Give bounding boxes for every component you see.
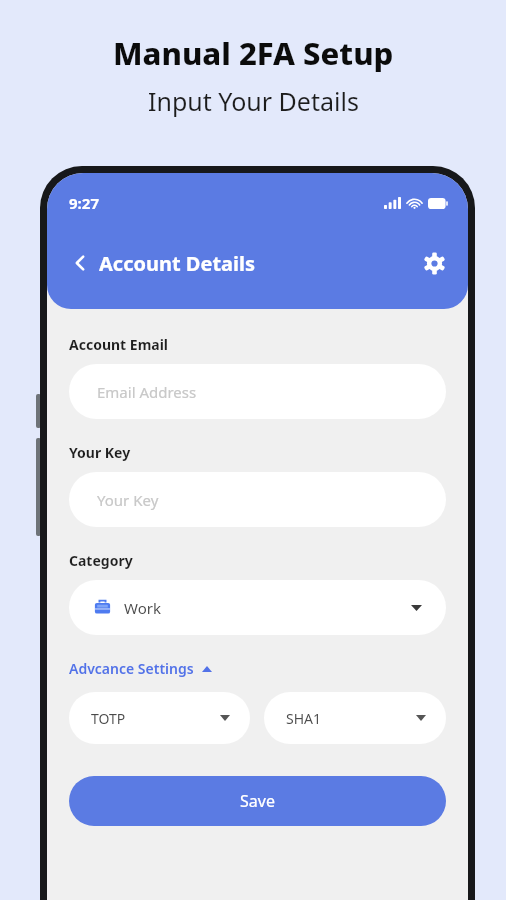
button[interactable]: Email Address	[69, 364, 446, 419]
button[interactable]: Settings	[414, 243, 454, 283]
staticText: Work	[124, 598, 161, 618]
staticText: Manual 2FA Setup	[113, 32, 394, 74]
staticText: Input Your Details	[148, 84, 359, 118]
button[interactable]: Back	[63, 246, 97, 280]
staticText: Your Key	[97, 490, 159, 510]
staticText: Email Address	[97, 382, 197, 402]
staticText: Account Details	[99, 250, 256, 277]
button[interactable]: Save	[69, 776, 446, 826]
staticText: 9:27	[69, 193, 99, 213]
button[interactable]: TOTP	[69, 692, 250, 744]
button[interactable]: Advcance Settings	[69, 657, 212, 680]
staticText: Advcance Settings	[69, 659, 194, 678]
staticText: Your Key	[69, 443, 131, 462]
staticText: Category	[69, 551, 133, 570]
staticText: Account Email	[69, 335, 169, 354]
staticText: SHA1	[286, 709, 322, 728]
staticText: TOTP	[91, 709, 126, 728]
button[interactable]: Work	[69, 580, 446, 635]
button[interactable]: Your Key	[69, 472, 446, 527]
button[interactable]: SHA1	[264, 692, 446, 744]
staticText: Save	[240, 790, 275, 812]
